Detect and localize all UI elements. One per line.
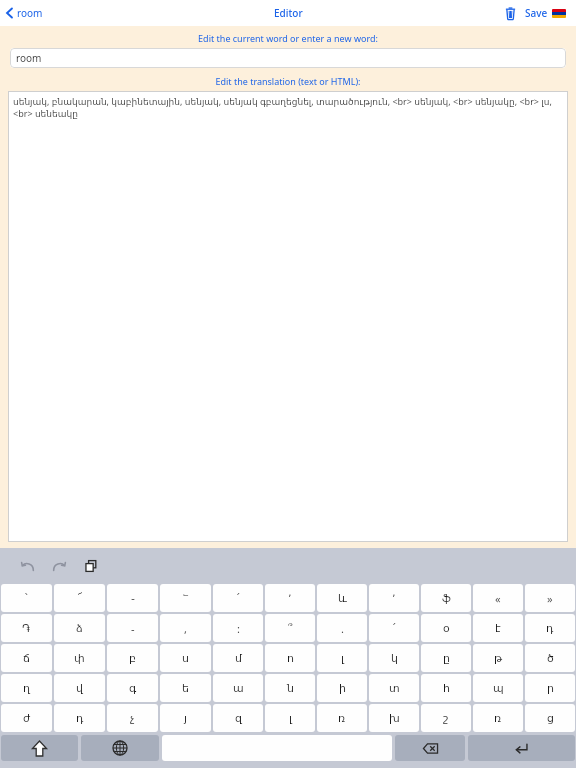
button[interactable]: ձ (54, 614, 105, 642)
button[interactable]: ե (160, 674, 211, 702)
button[interactable]: օ (421, 614, 471, 642)
staticText: ն (287, 682, 294, 695)
button[interactable]: չ (107, 704, 158, 732)
staticText: փ (74, 652, 85, 665)
button[interactable]: ՛ (369, 614, 419, 642)
button[interactable]: ֏ (1, 614, 52, 642)
button[interactable]: « (473, 584, 523, 612)
button[interactable]: մ (213, 644, 263, 672)
button[interactable]: room (0, 3, 51, 23)
button[interactable]: ՛ (213, 584, 263, 612)
staticText: ռ (494, 712, 502, 725)
button[interactable]: ժ (1, 704, 52, 732)
button[interactable]: room (10, 48, 566, 68)
button[interactable]: դ (54, 704, 105, 732)
button[interactable]: գ (107, 674, 158, 702)
button[interactable]: ֆ (421, 584, 471, 612)
button[interactable]: . (317, 614, 367, 642)
button[interactable]: ռ (473, 704, 523, 732)
button[interactable]: : (213, 614, 263, 642)
button[interactable]: ը (421, 644, 471, 672)
button[interactable]: ՜ (54, 584, 105, 612)
staticText: - (131, 621, 135, 636)
staticText: լ (341, 652, 344, 665)
button[interactable]: - (107, 614, 158, 642)
staticText: ց (547, 712, 554, 725)
button[interactable]: ՝ (1, 584, 52, 612)
staticText: ձ (76, 622, 83, 635)
button[interactable]: յ (160, 704, 211, 732)
button[interactable]: ճ (1, 644, 52, 672)
staticText: Edit the current word or enter a new wor… (0, 32, 576, 44)
staticText: Edit the translation (text or HTML): (0, 75, 576, 87)
staticText: Editor (274, 6, 303, 20)
button[interactable]: ՚ (265, 584, 315, 612)
staticText: : (237, 621, 240, 636)
button[interactable]: սենյակ, բնակարան, կաբինետային, սենյակ, ս… (8, 91, 568, 542)
staticText: բ (129, 652, 136, 665)
button[interactable]: ց (525, 704, 575, 732)
button[interactable]: զ (213, 704, 263, 732)
button[interactable]: , (160, 614, 211, 642)
button[interactable]: լ (317, 644, 367, 672)
button[interactable]: տ (369, 674, 419, 702)
staticText: ժ (23, 712, 31, 725)
button[interactable]: շ (421, 704, 471, 732)
button[interactable]: Delete (499, 2, 521, 24)
button[interactable]: պ (473, 674, 523, 702)
button[interactable]: հ (421, 674, 471, 702)
button[interactable]: խ (369, 704, 419, 732)
staticText: խ (389, 712, 400, 725)
staticText: ճ (23, 652, 30, 665)
button[interactable]: ՟ (160, 584, 211, 612)
button[interactable]: վ (54, 674, 105, 702)
button[interactable]: ա (213, 674, 263, 702)
button[interactable]: Change language (81, 735, 159, 761)
button[interactable]: ո (265, 644, 315, 672)
button[interactable]: է (473, 614, 523, 642)
button[interactable]: » (525, 584, 575, 612)
staticText: ե (182, 682, 189, 695)
button[interactable]: ր (525, 674, 575, 702)
staticText: պ (493, 682, 504, 695)
button[interactable]: և (317, 584, 367, 612)
button[interactable]: դ (525, 614, 575, 642)
staticText: ՜ (78, 592, 82, 605)
staticText: դ (546, 622, 554, 635)
button[interactable]: ղ (1, 674, 52, 702)
staticText: ՞ (288, 622, 293, 635)
button[interactable]: Language (552, 9, 566, 18)
button[interactable]: բ (107, 644, 158, 672)
button[interactable]: Return (468, 735, 575, 761)
button[interactable]: Copy (78, 553, 104, 579)
staticText: ծ (547, 652, 554, 665)
staticText: ՝ (25, 592, 28, 605)
button[interactable]: Redo (46, 553, 72, 579)
button[interactable]: ֊ (107, 584, 158, 612)
button[interactable]: ՚ (369, 584, 419, 612)
button[interactable]: կ (369, 644, 419, 672)
button[interactable]: Shift (1, 735, 78, 761)
button[interactable]: ռ (317, 704, 367, 732)
button[interactable]: ծ (525, 644, 575, 672)
staticText: հ (443, 682, 450, 695)
button[interactable]: փ (54, 644, 105, 672)
button[interactable]: Save (521, 3, 552, 23)
button[interactable]: ՞ (265, 614, 315, 642)
staticText: ՛ (237, 592, 240, 605)
button[interactable]: ն (265, 674, 315, 702)
staticText: և (338, 592, 347, 605)
staticText: օ (443, 622, 450, 635)
button[interactable]: թ (473, 644, 523, 672)
button[interactable]: լ (265, 704, 315, 732)
staticText: ռ (338, 712, 346, 725)
staticText: room (16, 51, 42, 65)
staticText: Save (525, 6, 548, 20)
button[interactable]: Undo (14, 553, 40, 579)
staticText: շ (443, 712, 449, 725)
staticText: ՛ (393, 622, 396, 635)
button[interactable]: ի (317, 674, 367, 702)
button[interactable]: Backspace (395, 735, 465, 761)
button[interactable]: ս (160, 644, 211, 672)
